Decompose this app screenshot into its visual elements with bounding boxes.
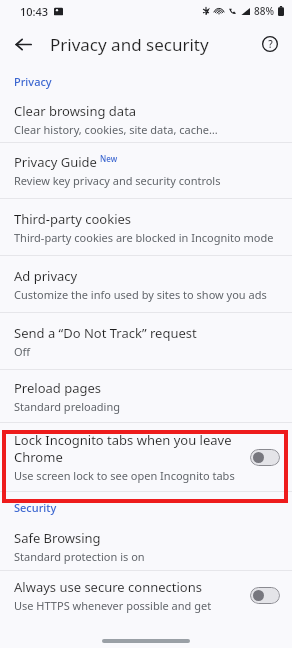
- staticText: Ad privacy: [14, 267, 78, 285]
- button[interactable]: Send a “Do Not Track” request: [0, 313, 292, 369]
- staticText: Third-party cookies: [14, 210, 132, 228]
- staticText: Privacy Guide: [14, 153, 97, 171]
- button[interactable]: Always use secure connections: [0, 571, 292, 619]
- staticText: ?: [268, 37, 273, 51]
- staticText: Clear history, cookies, site data, cache…: [14, 122, 218, 137]
- staticText: Privacy and security: [50, 33, 209, 56]
- button[interactable]: Preload pages: [0, 370, 292, 422]
- staticText: Privacy: [14, 74, 52, 89]
- staticText: Use screen lock to see open Incognito ta…: [14, 468, 235, 483]
- staticText: Safe Browsing: [14, 529, 101, 547]
- button[interactable]: Ad privacy: [0, 256, 292, 312]
- staticText: Security: [14, 500, 57, 515]
- button[interactable]: Clear browsing data: [0, 96, 292, 142]
- staticText: Review key privacy and security controls: [14, 173, 221, 188]
- staticText: Use HTTPS whenever possible and get: [14, 598, 212, 613]
- button[interactable]: Lock Incognito tabs when you leave Chrom…: [0, 423, 292, 491]
- button[interactable]: Safe Browsing: [0, 522, 292, 570]
- button[interactable]: Third-party cookies: [0, 199, 292, 255]
- staticText: 10:43: [20, 4, 49, 19]
- staticText: Third-party cookies are blocked in Incog…: [14, 230, 274, 245]
- staticText: New: [100, 153, 118, 164]
- staticText: Always use secure connections: [14, 578, 202, 596]
- staticText: Off: [14, 344, 31, 359]
- staticText: 88%: [254, 4, 274, 18]
- staticText: Standard preloading: [14, 399, 120, 414]
- button[interactable]: Back: [6, 27, 40, 61]
- button[interactable]: Help: [254, 28, 286, 60]
- staticText: Clear browsing data: [14, 102, 137, 120]
- button[interactable]: Toggle: [250, 587, 280, 604]
- button[interactable]: Privacy Guide: [0, 143, 292, 198]
- staticText: Send a “Do Not Track” request: [14, 324, 197, 342]
- staticText: Standard protection is on: [14, 549, 145, 564]
- button[interactable]: Toggle: [250, 449, 280, 466]
- staticText: Preload pages: [14, 379, 102, 397]
- staticText: Lock Incognito tabs when you leave Chrom…: [14, 431, 242, 466]
- staticText: Customize the info used by sites to show…: [14, 287, 267, 302]
